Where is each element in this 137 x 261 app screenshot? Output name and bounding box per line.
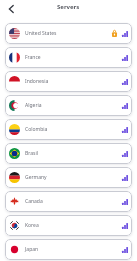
staticText: Indonesia	[25, 78, 49, 85]
button[interactable]: Canada	[5, 191, 132, 212]
staticText: Germany	[25, 174, 47, 181]
staticText: United States	[25, 30, 57, 37]
staticText: Servers	[57, 3, 80, 11]
button[interactable]: Japan	[5, 239, 132, 260]
staticText: France	[25, 54, 41, 61]
button[interactable]: France	[5, 47, 132, 68]
staticText: Brasil	[25, 150, 38, 157]
button[interactable]: Brasil	[5, 143, 132, 164]
button[interactable]: Colombia	[5, 119, 132, 140]
button[interactable]: Germany	[5, 167, 132, 188]
button[interactable]: United States	[5, 23, 132, 44]
staticText: Colombia	[25, 126, 48, 133]
button[interactable]: Indonesia	[5, 71, 132, 92]
staticText: Japan	[25, 246, 39, 253]
button[interactable]: Korea	[5, 215, 132, 236]
staticText: Algeria	[25, 102, 42, 109]
staticText: Canada	[25, 198, 43, 205]
button[interactable]: Back	[4, 2, 18, 16]
staticText: Korea	[25, 222, 39, 229]
button[interactable]: Algeria	[5, 95, 132, 116]
